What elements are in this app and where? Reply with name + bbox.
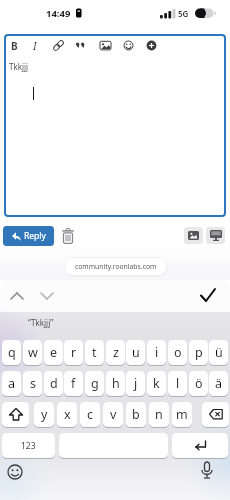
button[interactable]: 123 xyxy=(2,433,55,458)
staticText: 14:49 xyxy=(46,7,71,20)
staticText: 123 xyxy=(21,440,36,452)
button[interactable]: community.roonlabs.com xyxy=(64,257,167,276)
button[interactable] xyxy=(7,464,23,480)
staticText: c xyxy=(87,406,94,423)
button[interactable]: x xyxy=(57,402,77,427)
button[interactable]: e xyxy=(44,340,63,365)
staticText: i xyxy=(155,344,159,361)
button[interactable]: r xyxy=(64,340,83,365)
button[interactable]: B xyxy=(7,38,21,54)
staticText: e xyxy=(50,344,58,361)
staticText: w xyxy=(28,344,38,361)
button[interactable] xyxy=(61,228,75,244)
button[interactable] xyxy=(75,39,88,52)
button[interactable]: w xyxy=(23,340,42,365)
button[interactable] xyxy=(52,39,65,52)
button[interactable] xyxy=(172,433,228,458)
staticText: p xyxy=(195,344,203,361)
staticText: ü xyxy=(215,344,223,361)
staticText: Reply xyxy=(24,230,46,242)
button[interactable]: s xyxy=(23,371,42,396)
button[interactable] xyxy=(38,288,56,304)
staticText: l xyxy=(176,375,180,392)
staticText: u xyxy=(132,344,140,361)
button[interactable]: v xyxy=(103,402,123,427)
button[interactable]: ü xyxy=(209,340,228,365)
button[interactable]: I xyxy=(29,38,41,54)
button[interactable]: f xyxy=(64,371,83,396)
staticText: B xyxy=(11,39,18,53)
button[interactable]: q xyxy=(2,340,21,365)
staticText: a xyxy=(8,375,16,392)
button[interactable]: t xyxy=(85,340,104,365)
staticText: q xyxy=(8,344,16,361)
button[interactable]: n xyxy=(149,402,169,427)
button[interactable]: p xyxy=(189,340,208,365)
button[interactable]: g xyxy=(85,371,104,396)
staticText: v xyxy=(110,406,117,423)
staticText: z xyxy=(113,344,119,361)
button[interactable]: l xyxy=(168,371,187,396)
button[interactable] xyxy=(2,402,29,427)
staticText: ö xyxy=(195,375,203,392)
button[interactable]: m xyxy=(172,402,192,427)
button[interactable] xyxy=(184,227,203,244)
staticText: j xyxy=(134,375,138,392)
button[interactable]: k xyxy=(147,371,166,396)
button[interactable]: Reply xyxy=(3,226,54,246)
staticText: ä xyxy=(215,375,223,392)
button[interactable] xyxy=(199,461,215,481)
button[interactable]: j xyxy=(126,371,145,396)
button[interactable]: o xyxy=(168,340,187,365)
button[interactable] xyxy=(198,286,218,304)
staticText: k xyxy=(153,375,160,392)
staticText: y xyxy=(41,406,48,423)
staticText: “Tkkjjj” xyxy=(28,317,54,328)
staticText: o xyxy=(174,344,182,361)
staticText: Tkkjjj xyxy=(9,61,29,72)
button[interactable]: i xyxy=(147,340,166,365)
button[interactable]: b xyxy=(126,402,146,427)
staticText: x xyxy=(64,406,71,423)
button[interactable]: h xyxy=(106,371,125,396)
button[interactable]: u xyxy=(126,340,145,365)
button[interactable]: d xyxy=(44,371,63,396)
button[interactable] xyxy=(59,433,168,458)
button[interactable] xyxy=(8,288,26,304)
staticText: 5G xyxy=(178,8,189,19)
staticText: r xyxy=(71,344,77,361)
button[interactable]: ä xyxy=(209,371,228,396)
button[interactable] xyxy=(206,227,225,244)
button[interactable]: a xyxy=(2,371,21,396)
button[interactable] xyxy=(145,39,158,52)
staticText: d xyxy=(50,375,58,392)
staticText: I xyxy=(33,39,37,53)
staticText: h xyxy=(112,375,120,392)
staticText: f xyxy=(71,375,76,392)
button[interactable] xyxy=(99,39,112,52)
button[interactable]: c xyxy=(80,402,100,427)
button[interactable]: z xyxy=(106,340,125,365)
staticText: community.roonlabs.com xyxy=(75,262,157,271)
button[interactable] xyxy=(122,39,135,52)
staticText: b xyxy=(132,406,140,423)
staticText: s xyxy=(30,375,36,392)
staticText: n xyxy=(155,406,163,423)
staticText: t xyxy=(92,344,97,361)
staticText: m xyxy=(176,406,188,423)
staticText: g xyxy=(91,375,99,392)
button[interactable] xyxy=(202,402,229,427)
button[interactable]: ö xyxy=(189,371,208,396)
button[interactable]: y xyxy=(34,402,54,427)
